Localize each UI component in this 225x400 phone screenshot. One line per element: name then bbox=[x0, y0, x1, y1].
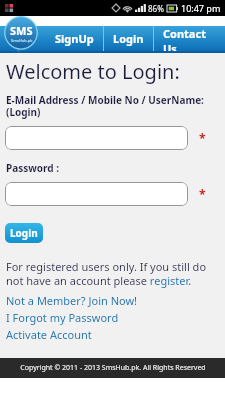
staticText: SMS bbox=[10, 23, 33, 38]
staticText: Password : bbox=[6, 161, 60, 175]
staticText: SignUp bbox=[55, 31, 94, 46]
button[interactable]: SmsHub.pk home bbox=[3, 17, 39, 53]
button[interactable]: SignUp bbox=[46, 26, 103, 51]
button[interactable]: I Forgot my Password bbox=[0, 309, 225, 326]
staticText: Not a Member? Join Now! bbox=[6, 293, 138, 308]
staticText: 10:47 pm bbox=[181, 2, 221, 14]
staticText: I Forgot my Password bbox=[6, 310, 119, 325]
staticText: SmsHub.pk bbox=[11, 38, 33, 43]
staticText: Copyright © 2011 - 2013 SmsHub.pk. All R… bbox=[20, 363, 206, 373]
staticText: Contact Us bbox=[163, 26, 216, 51]
staticText: Login bbox=[10, 226, 38, 240]
staticText: * bbox=[199, 186, 206, 202]
staticText: Activate Account bbox=[6, 327, 92, 342]
staticText: * bbox=[199, 130, 206, 146]
button[interactable]: Login bbox=[104, 26, 153, 51]
button[interactable]: Text input field bbox=[5, 182, 188, 206]
staticText: Login bbox=[113, 31, 144, 46]
button[interactable]: Login bbox=[5, 223, 43, 243]
button[interactable]: Activate Account bbox=[0, 326, 225, 343]
staticText: Welcome to Login: bbox=[6, 58, 180, 85]
button[interactable]: Text input field bbox=[5, 126, 188, 150]
button[interactable]: Not a Member? Join Now! bbox=[0, 292, 225, 309]
staticText: 86% bbox=[148, 3, 164, 14]
button[interactable]: Contact Us bbox=[154, 26, 225, 51]
staticText: E-Mail Address / Mobile No / UserName: (… bbox=[6, 93, 204, 119]
staticText: For registered users only. If you still … bbox=[6, 259, 219, 288]
